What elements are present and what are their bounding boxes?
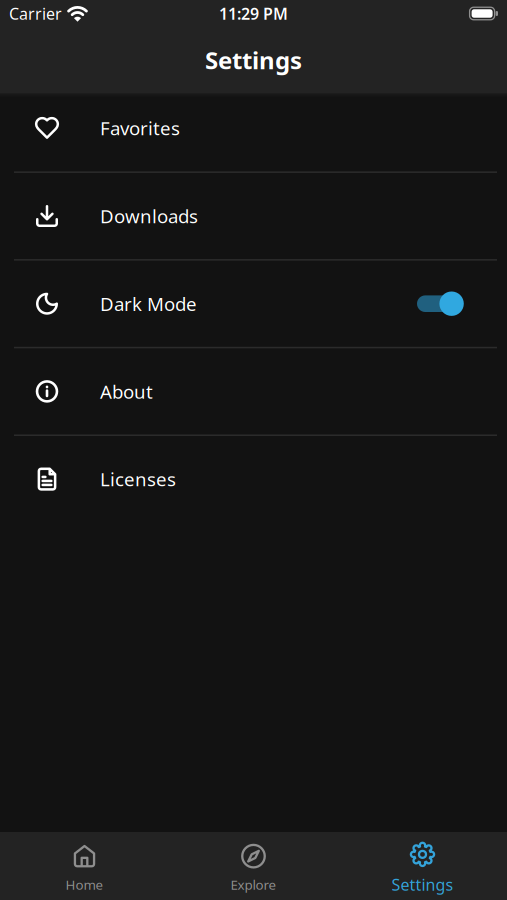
- staticText: Settings: [205, 44, 302, 76]
- staticText: Home: [65, 876, 103, 893]
- staticText: About: [100, 379, 153, 404]
- button[interactable]: Downloads: [0, 173, 507, 259]
- button[interactable]: Settings: [338, 837, 507, 895]
- button[interactable]: Licenses: [0, 436, 507, 522]
- button[interactable]: About: [0, 348, 507, 434]
- staticText: Licenses: [100, 467, 176, 491]
- staticText: Downloads: [100, 204, 198, 228]
- staticText: Favorites: [100, 115, 180, 140]
- staticText: Explore: [230, 876, 276, 893]
- button[interactable]: Favorites: [0, 96, 507, 171]
- staticText: Dark Mode: [100, 291, 197, 316]
- staticText: Carrier: [9, 3, 62, 24]
- button[interactable]: Explore: [169, 839, 338, 893]
- button[interactable]: Home: [0, 839, 169, 893]
- button[interactable]: Dark Mode: [0, 261, 507, 347]
- staticText: 11:29 PM: [219, 3, 288, 24]
- staticText: Settings: [391, 874, 453, 895]
